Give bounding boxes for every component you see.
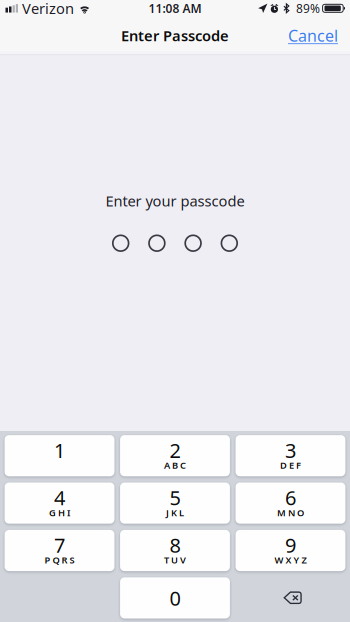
staticText: 6 bbox=[285, 484, 296, 511]
button[interactable]: 2 bbox=[120, 435, 230, 476]
staticText: 5 bbox=[169, 484, 180, 511]
button[interactable]: Delete bbox=[235, 577, 345, 618]
button[interactable]: Cancel bbox=[276, 19, 350, 52]
staticText: 11:08 AM bbox=[148, 0, 201, 16]
staticText: 3 bbox=[285, 437, 296, 463]
staticText: J K L bbox=[166, 506, 184, 519]
button[interactable]: 9 bbox=[235, 530, 345, 571]
staticText: P Q R S bbox=[44, 554, 74, 566]
staticText: 89% bbox=[296, 0, 320, 16]
button[interactable]: 8 bbox=[120, 530, 230, 571]
staticText: D E F bbox=[280, 459, 301, 471]
staticText: 7 bbox=[54, 532, 65, 558]
staticText: 4 bbox=[54, 484, 65, 511]
staticText: Enter your passcode bbox=[105, 191, 244, 210]
button[interactable]: 5 bbox=[120, 482, 230, 524]
staticText: G H I bbox=[49, 506, 70, 519]
staticText: 2 bbox=[169, 437, 180, 463]
button[interactable]: 4 bbox=[5, 482, 114, 524]
button[interactable]: 3 bbox=[235, 435, 345, 476]
button[interactable]: 6 bbox=[235, 482, 345, 524]
button[interactable]: 7 bbox=[5, 530, 114, 571]
staticText: W X Y Z bbox=[274, 554, 306, 566]
button[interactable]: 0 bbox=[120, 577, 230, 618]
staticText: Enter Passcode bbox=[121, 26, 229, 45]
staticText: Verizon bbox=[22, 0, 74, 18]
staticText: 0 bbox=[169, 585, 180, 611]
button[interactable]: 1 bbox=[5, 435, 114, 476]
staticText: 9 bbox=[285, 532, 296, 558]
staticText: A B C bbox=[164, 459, 186, 471]
staticText: Cancel bbox=[288, 25, 338, 46]
staticText: T U V bbox=[164, 554, 186, 566]
staticText: M N O bbox=[277, 506, 304, 519]
staticText: 1 bbox=[54, 437, 65, 463]
staticText: 8 bbox=[169, 532, 180, 558]
